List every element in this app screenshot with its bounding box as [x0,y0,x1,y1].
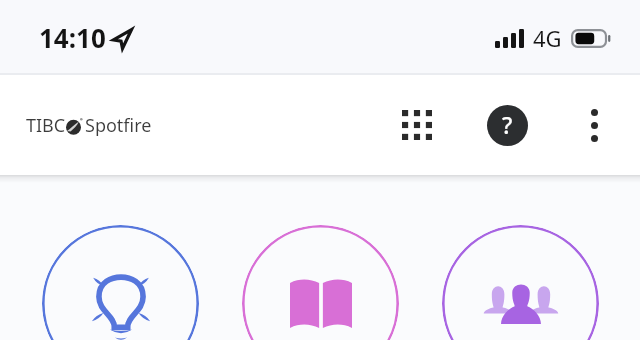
staticText: 4G [533,23,562,53]
button[interactable]: Community [442,225,599,340]
staticText: Spotfire [85,113,152,138]
button[interactable]: Learn [242,225,399,340]
staticText: TIBC [26,113,66,138]
button[interactable]: Ideas [42,225,199,340]
staticText: ? [502,109,513,140]
staticText: 14:10 [39,20,106,55]
button[interactable]: More options [568,99,620,151]
button[interactable]: Help [481,99,533,151]
button[interactable]: Apps [391,99,443,151]
